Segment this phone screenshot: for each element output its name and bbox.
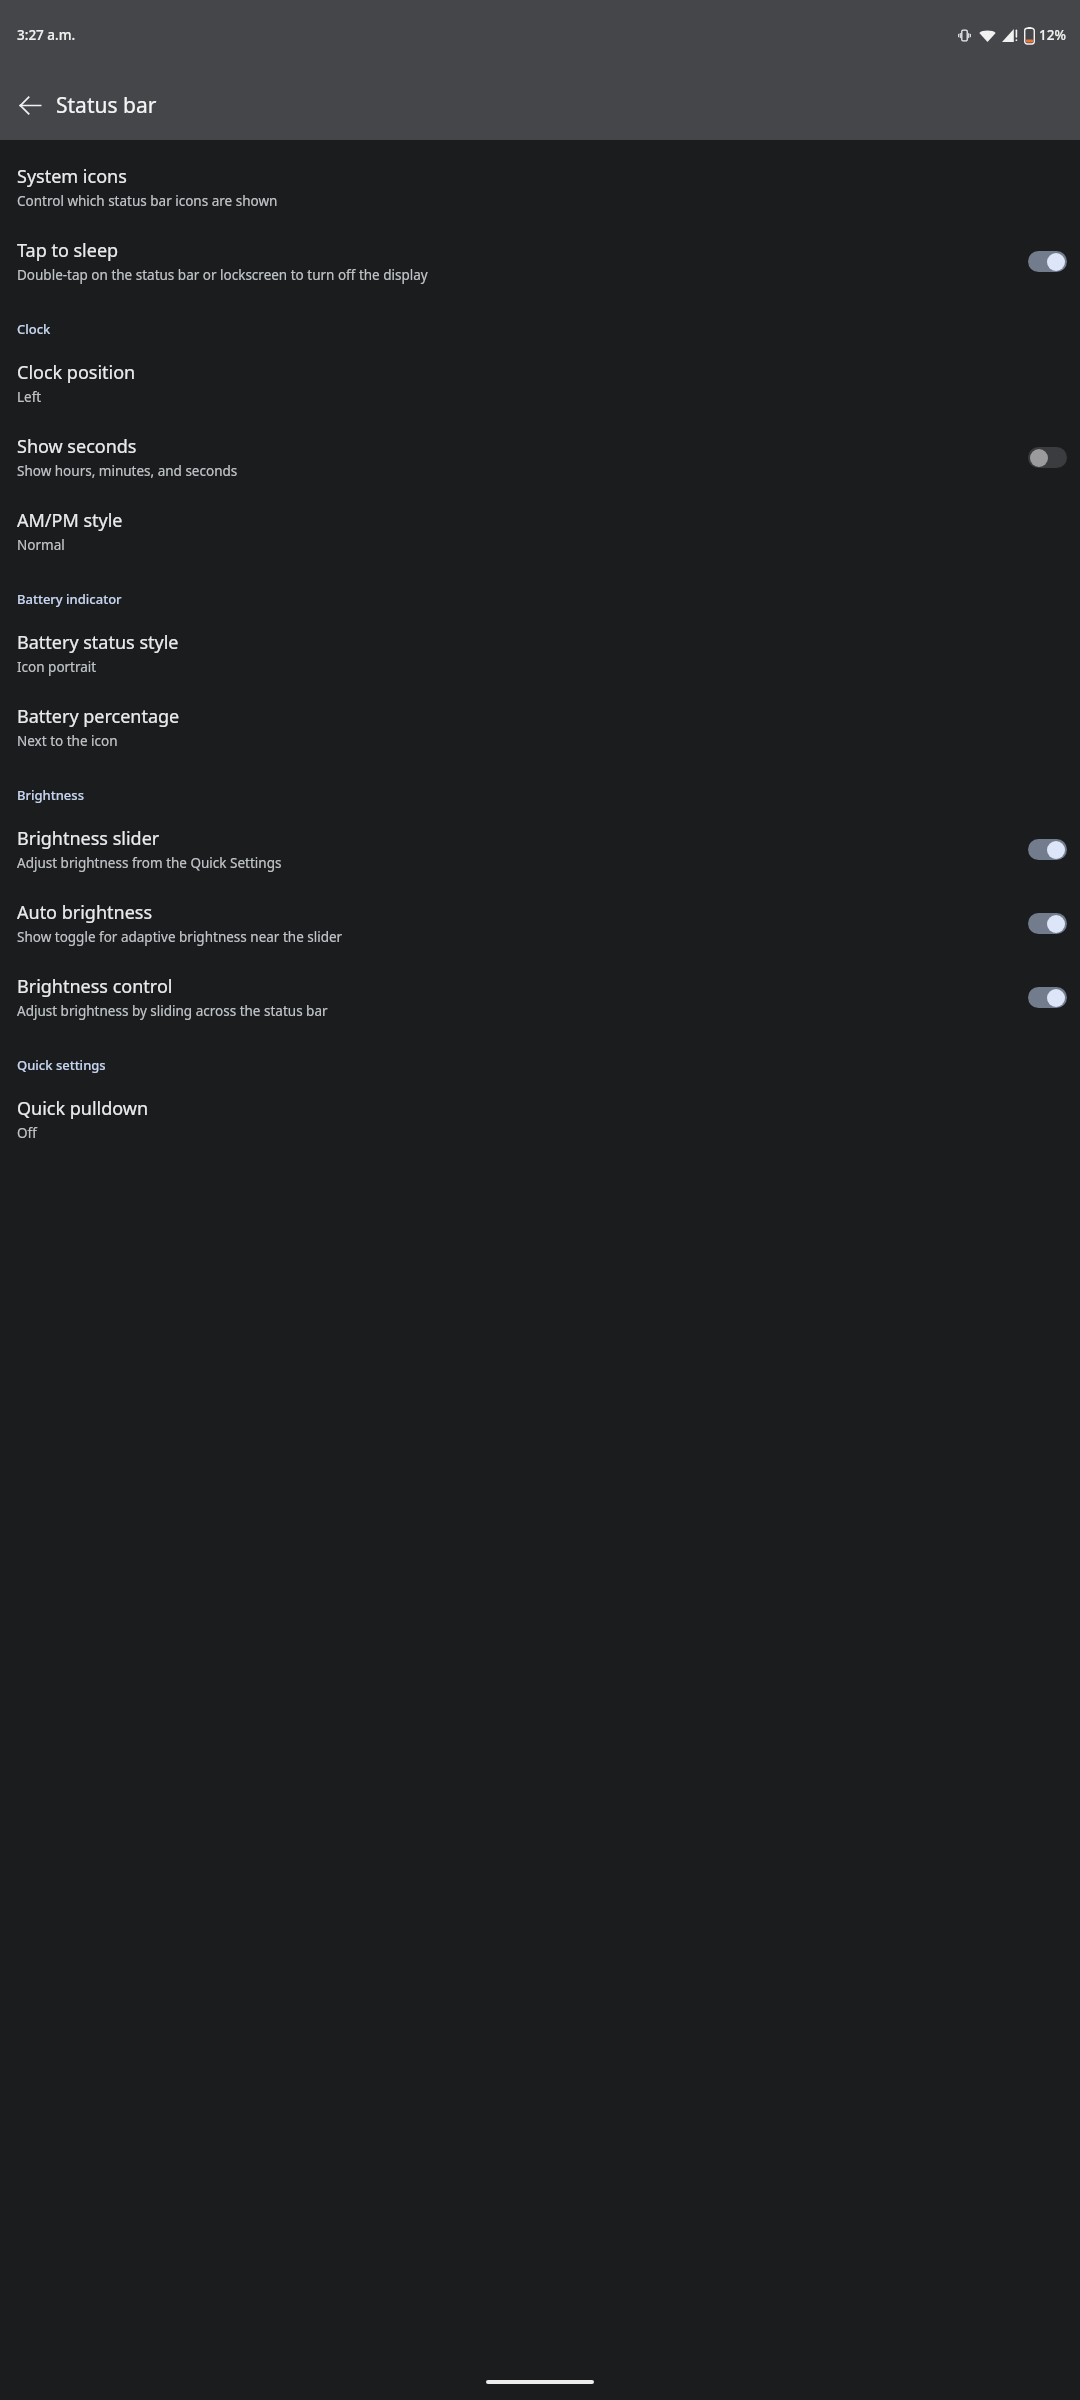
staticText: Control which status bar icons are shown [17, 192, 278, 210]
button[interactable] [1028, 447, 1067, 468]
button[interactable] [1028, 251, 1067, 272]
button[interactable]: Tap to sleep [0, 224, 1080, 298]
staticText: System icons [17, 164, 127, 189]
staticText: Battery percentage [17, 704, 180, 729]
staticText: 3:27 a.m. [17, 26, 76, 44]
staticText: Icon portrait [17, 658, 97, 676]
staticText: 12% [1039, 26, 1066, 44]
button[interactable]: Show seconds [0, 420, 1080, 494]
staticText: Tap to sleep [17, 238, 119, 263]
staticText: Quick settings [17, 1056, 106, 1074]
staticText: Brightness control [17, 974, 173, 999]
button[interactable]: Brightness control [0, 960, 1080, 1034]
staticText: Next to the icon [17, 732, 118, 750]
staticText: Normal [17, 536, 65, 554]
staticText: Off [17, 1124, 37, 1142]
staticText: Adjust brightness by sliding across the … [17, 1002, 328, 1020]
staticText: Auto brightness [17, 900, 153, 925]
staticText: Show hours, minutes, and seconds [17, 462, 238, 480]
button[interactable]: Battery percentage [0, 690, 1080, 764]
staticText: Adjust brightness from the Quick Setting… [17, 854, 282, 872]
staticText: AM/PM style [17, 508, 123, 533]
staticText: Quick pulldown [17, 1096, 149, 1121]
staticText: Show toggle for adaptive brightness near… [17, 928, 343, 946]
staticText: Brightness [17, 786, 84, 804]
button[interactable]: System icons [0, 150, 1080, 224]
staticText: Double-tap on the status bar or lockscre… [17, 266, 428, 284]
staticText: Clock [17, 320, 51, 338]
button[interactable]: Auto brightness [0, 886, 1080, 960]
staticText: Status bar [56, 91, 157, 120]
staticText: Show seconds [17, 434, 137, 459]
staticText: Clock position [17, 360, 136, 385]
button[interactable]: Quick pulldown [0, 1082, 1080, 1156]
staticText: Battery status style [17, 630, 179, 655]
button[interactable]: Back [6, 81, 54, 129]
button[interactable] [1028, 913, 1067, 934]
staticText: Left [17, 388, 42, 406]
button[interactable] [1028, 839, 1067, 860]
button[interactable]: Clock position [0, 346, 1080, 420]
button[interactable]: Battery status style [0, 616, 1080, 690]
staticText: Battery indicator [17, 590, 122, 608]
staticText: Brightness slider [17, 826, 160, 851]
button[interactable] [1028, 987, 1067, 1008]
button[interactable]: Brightness slider [0, 812, 1080, 886]
button[interactable]: AM/PM style [0, 494, 1080, 568]
